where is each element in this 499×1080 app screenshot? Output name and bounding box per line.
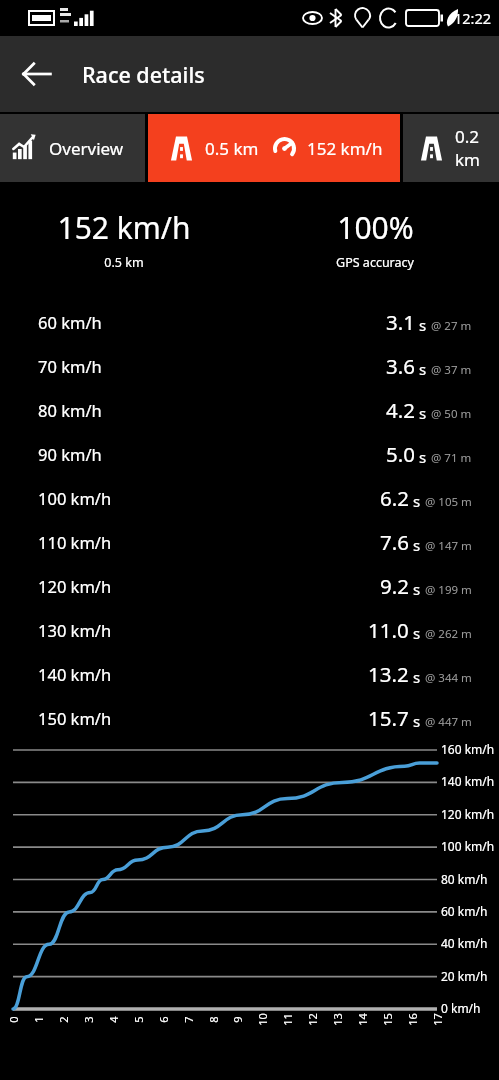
staticText: 6.2 [380, 484, 409, 512]
staticText: 80 km/h [38, 399, 102, 421]
staticText: @ 71 m [431, 450, 472, 466]
button[interactable]: 120 km/h [0, 564, 499, 608]
staticText: @ 27 m [431, 318, 472, 334]
staticText: @ 105 m [425, 494, 472, 510]
staticText: s [419, 447, 427, 467]
staticText: 20 km/h [441, 968, 488, 984]
staticText: 7 [181, 1016, 196, 1023]
staticText: s [413, 711, 421, 731]
staticText: 9.2 [380, 572, 409, 600]
staticText: 120 km/h [38, 575, 112, 597]
staticText: @ 37 m [431, 362, 472, 378]
staticText: 13.2 [368, 660, 409, 688]
staticText: @ 344 m [425, 670, 472, 686]
staticText: s [419, 359, 427, 379]
staticText: 90 km/h [38, 443, 102, 465]
staticText: 1 [31, 1016, 46, 1023]
staticText: 100 km/h [441, 838, 495, 854]
staticText: 15.7 [368, 704, 409, 732]
staticText: @ 50 m [431, 406, 472, 422]
button[interactable]: 110 km/h [0, 520, 499, 564]
staticText: 0.5 km [104, 254, 144, 271]
staticText: s [413, 667, 421, 687]
staticText: 110 km/h [38, 531, 112, 553]
staticText: Overview [49, 137, 124, 160]
staticText: 60 km/h [441, 903, 488, 919]
staticText: 4.2 [386, 396, 415, 424]
staticText: 100% [337, 207, 414, 248]
staticText: 80 km/h [441, 871, 488, 887]
button[interactable]: 0.5 km [148, 114, 400, 182]
staticText: GPS accuracy [336, 254, 414, 271]
staticText: 0.2 km [455, 125, 499, 171]
staticText: s [419, 403, 427, 423]
staticText: s [413, 491, 421, 511]
staticText: 0.5 km [205, 137, 259, 160]
staticText: 140 km/h [38, 663, 112, 685]
staticText: 6 [156, 1016, 171, 1023]
staticText: 120 km/h [441, 806, 495, 822]
staticText: @ 199 m [425, 582, 472, 598]
button[interactable]: 150 km/h [0, 696, 499, 740]
staticText: @ 262 m [425, 626, 472, 642]
staticText: 0 km/h [441, 1000, 481, 1016]
staticText: 12 [305, 1013, 320, 1026]
staticText: 0 [6, 1016, 21, 1023]
staticText: 3.6 [386, 352, 415, 380]
button[interactable]: 80 km/h [0, 388, 499, 432]
staticText: 11.0 [368, 616, 409, 644]
staticText: 5 [131, 1016, 146, 1023]
staticText: 8 [206, 1016, 221, 1023]
staticText: 11 [280, 1013, 295, 1026]
button[interactable]: 60 km/h [0, 300, 499, 344]
staticText: 160 km/h [441, 741, 495, 757]
button[interactable]: 0.2 km [403, 114, 499, 182]
staticText: 40 km/h [441, 935, 488, 951]
button[interactable]: Back [8, 45, 66, 103]
staticText: Race details [82, 60, 205, 89]
button[interactable]: 140 km/h [0, 652, 499, 696]
staticText: 152 km/h [307, 137, 383, 160]
staticText: s [413, 579, 421, 599]
staticText: 12:22 [454, 8, 492, 28]
staticText: 5.0 [386, 440, 415, 468]
button[interactable]: 90 km/h [0, 432, 499, 476]
staticText: 16 [405, 1013, 420, 1026]
staticText: 3 [81, 1016, 96, 1023]
staticText: s [419, 315, 427, 335]
button[interactable]: 100 km/h [0, 476, 499, 520]
staticText: 7.6 [380, 528, 409, 556]
staticText: s [413, 535, 421, 555]
staticText: 17 [430, 1013, 445, 1026]
button[interactable]: 130 km/h [0, 608, 499, 652]
staticText: 70 km/h [38, 355, 102, 377]
staticText: 152 km/h [57, 207, 191, 248]
staticText: 10 [255, 1013, 270, 1026]
staticText: 150 km/h [38, 707, 112, 729]
staticText: 14 [355, 1013, 370, 1026]
button[interactable]: 70 km/h [0, 344, 499, 388]
staticText: 9 [230, 1016, 245, 1023]
staticText: 130 km/h [38, 619, 112, 641]
staticText: 15 [380, 1013, 395, 1026]
staticText: 60 km/h [38, 311, 102, 333]
staticText: 100 km/h [38, 487, 112, 509]
staticText: @ 447 m [425, 714, 472, 730]
staticText: 13 [330, 1013, 345, 1026]
staticText: 140 km/h [441, 773, 495, 789]
staticText: 2 [56, 1016, 71, 1023]
staticText: 3.1 [386, 308, 415, 336]
button[interactable]: Overview [0, 114, 145, 182]
staticText: @ 147 m [425, 538, 472, 554]
staticText: 4 [106, 1016, 121, 1023]
staticText: s [413, 623, 421, 643]
